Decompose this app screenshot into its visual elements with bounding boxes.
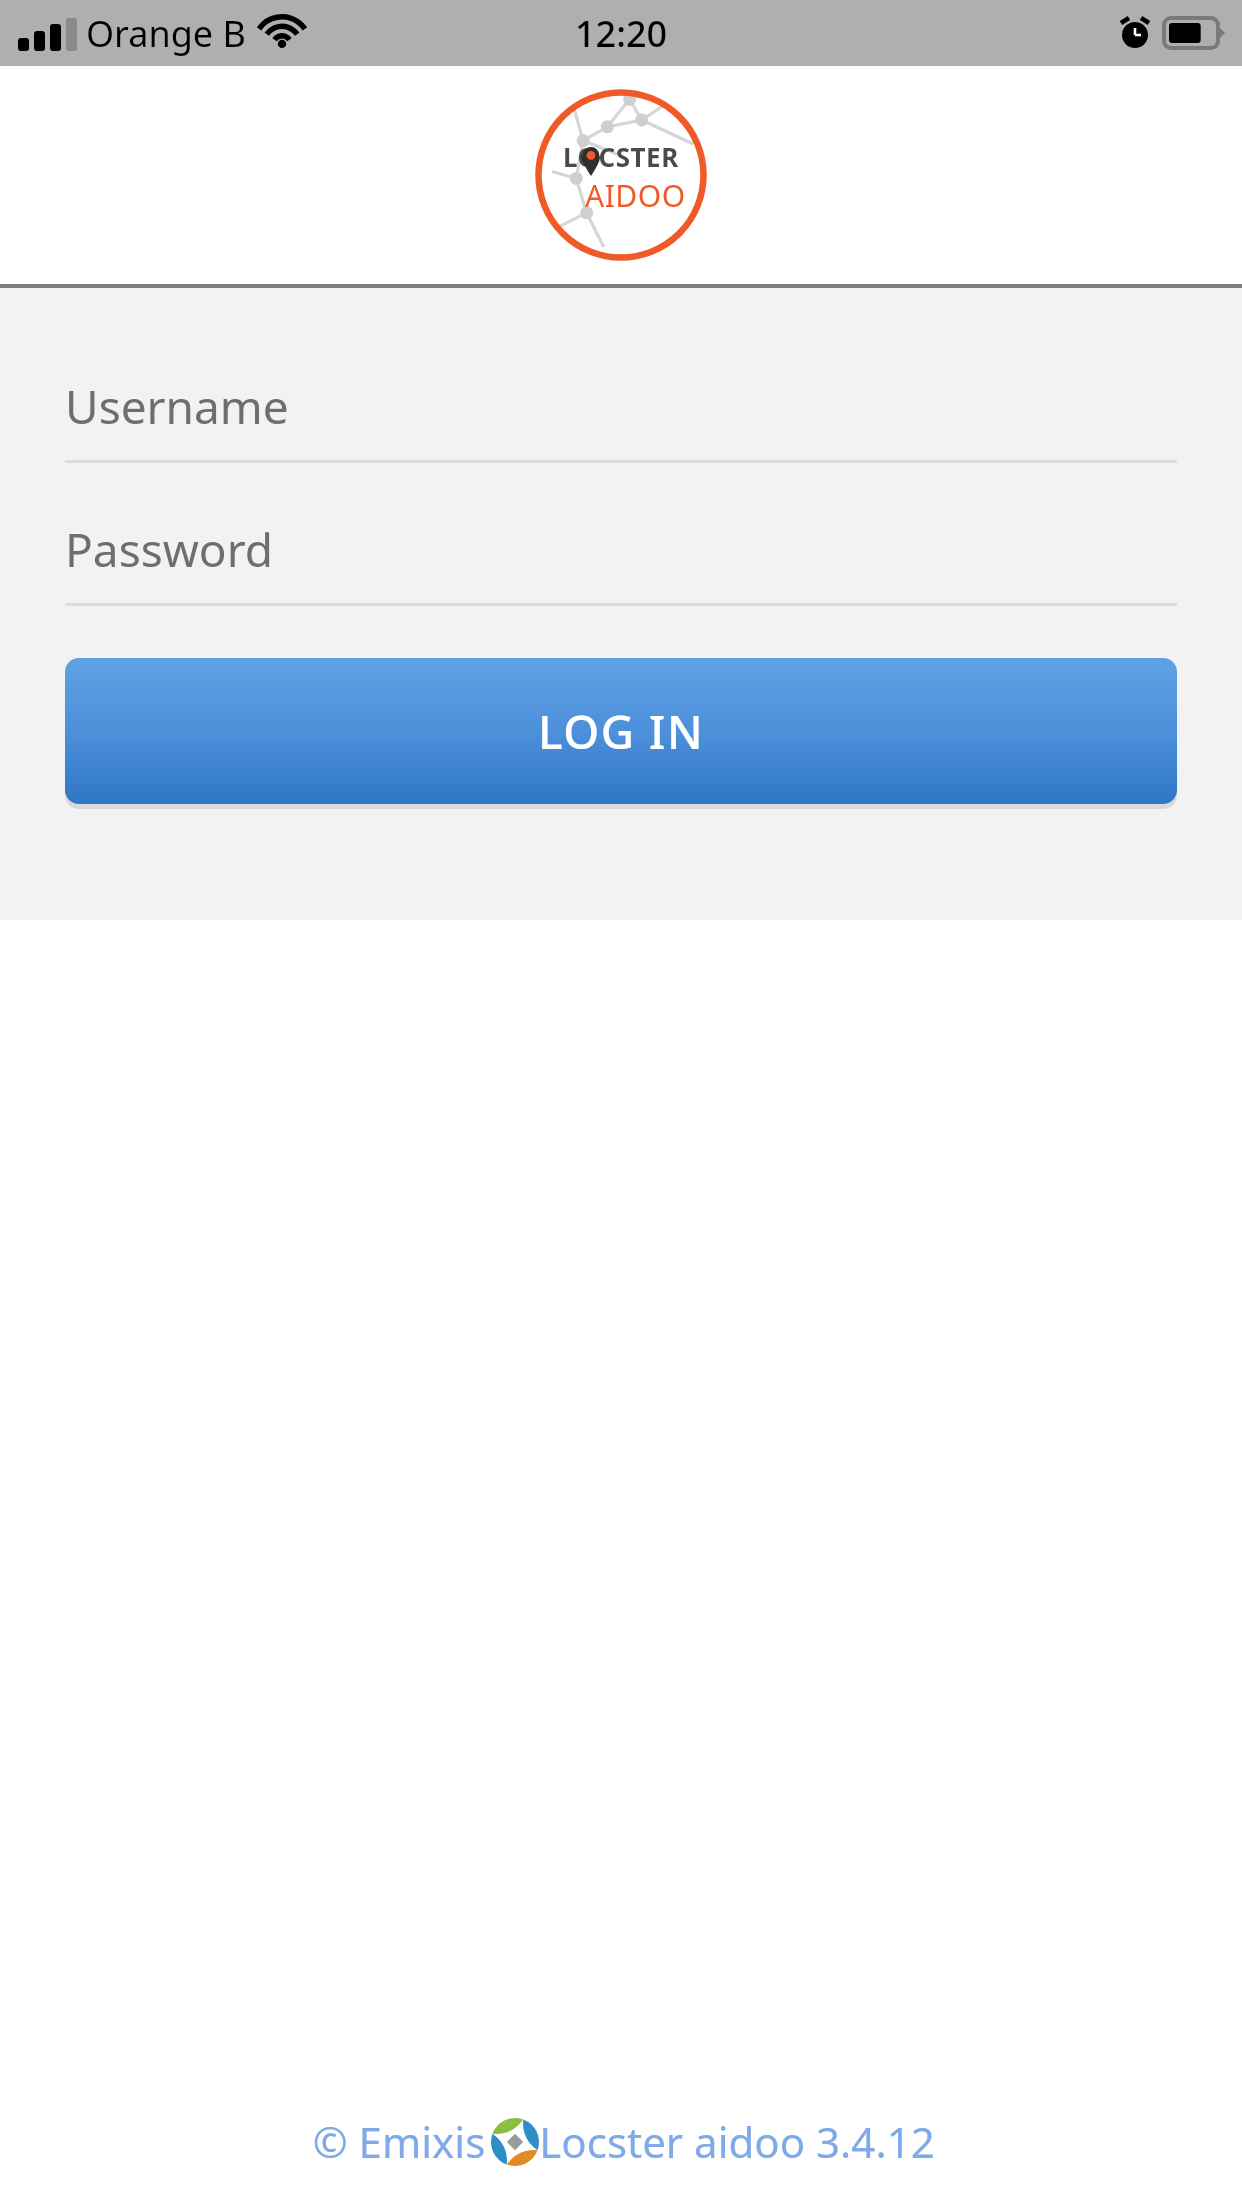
- button[interactable]: Username: [65, 370, 1177, 463]
- staticText: Locster aidoo 3.4.12: [539, 2113, 935, 2170]
- button[interactable]: LOG IN: [65, 658, 1177, 804]
- staticText: LOCSTER: [563, 139, 679, 174]
- staticText: LOG IN: [538, 700, 705, 763]
- staticText: © Emixis: [307, 2113, 491, 2170]
- staticText: AIDOO: [585, 175, 686, 216]
- button[interactable]: Password: [65, 513, 1177, 606]
- staticText: Username: [65, 375, 289, 438]
- staticText: Orange B: [86, 9, 246, 58]
- staticText: Password: [65, 518, 274, 581]
- other: Emixis logo: [491, 2118, 539, 2166]
- staticText: 12:20: [575, 9, 668, 58]
- button[interactable]: © Emixis: [0, 2113, 1242, 2170]
